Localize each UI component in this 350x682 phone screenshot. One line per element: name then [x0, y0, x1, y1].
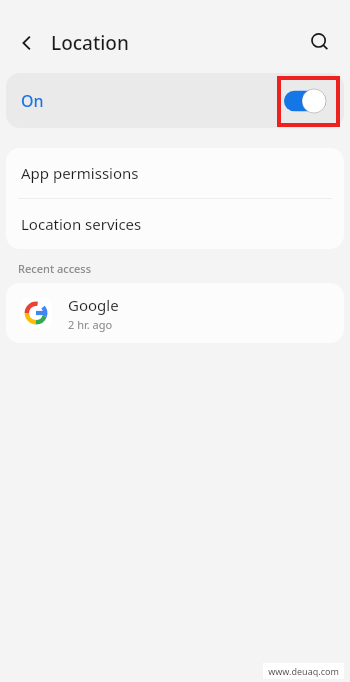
button[interactable]: On: [6, 73, 344, 128]
staticText: Google: [68, 295, 119, 315]
button[interactable]: Location services: [6, 199, 344, 249]
staticText: Location services: [21, 214, 142, 234]
staticText: Location: [51, 30, 129, 56]
button[interactable]: Google: [6, 283, 344, 343]
button[interactable]: App permissions: [6, 148, 344, 198]
staticText: 2 hr. ago: [68, 317, 113, 332]
staticText: On: [21, 90, 44, 112]
staticText: Recent access: [18, 261, 92, 276]
staticText: www.deuaq.com: [268, 665, 339, 677]
button[interactable]: Search: [302, 24, 338, 60]
staticText: App permissions: [21, 163, 139, 183]
button[interactable]: Location toggle: [284, 89, 326, 113]
button[interactable]: Back: [10, 26, 44, 60]
